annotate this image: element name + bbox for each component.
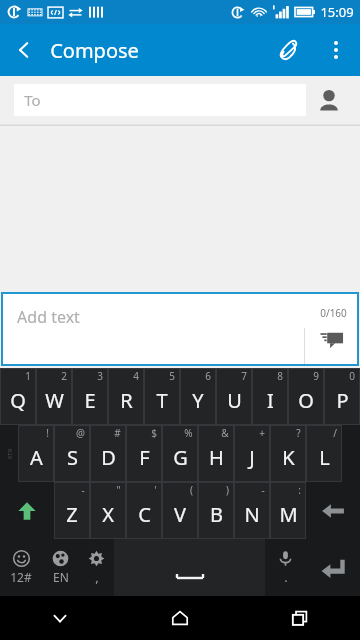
button[interactable]: Pick contact xyxy=(306,77,352,123)
button[interactable]: & xyxy=(198,425,234,482)
button[interactable]: ? xyxy=(270,425,306,482)
button[interactable]: Language xyxy=(42,539,78,596)
button[interactable]: $ xyxy=(126,425,162,482)
button[interactable]: : xyxy=(270,482,306,539)
button[interactable]: Backspace xyxy=(306,482,360,539)
button[interactable]: + xyxy=(234,425,270,482)
staticText: B xyxy=(210,501,223,528)
staticText: " xyxy=(116,483,121,497)
button[interactable]: ! xyxy=(18,425,54,482)
button[interactable]: # xyxy=(90,425,126,482)
staticText: T xyxy=(156,387,168,414)
button[interactable]: More options xyxy=(312,26,360,74)
button[interactable]: 7 xyxy=(216,368,252,425)
button[interactable]: Space xyxy=(114,539,265,596)
staticText: & xyxy=(221,426,229,440)
staticText: Q xyxy=(10,387,26,414)
button[interactable]: Add text xyxy=(1,292,359,366)
staticText: 4 xyxy=(133,369,139,383)
staticText: ' xyxy=(154,483,157,497)
button[interactable]: % xyxy=(162,425,198,482)
button[interactable]: Settings and comma xyxy=(78,539,114,596)
staticText: 9 xyxy=(313,369,319,383)
staticText: Add text xyxy=(17,306,80,328)
button[interactable]: - xyxy=(234,482,270,539)
staticText: # xyxy=(114,426,121,440)
button[interactable]: Symbols xyxy=(0,539,42,596)
staticText: O xyxy=(298,387,314,414)
staticText: V xyxy=(174,501,186,528)
staticText: N xyxy=(244,501,260,528)
staticText: S xyxy=(67,444,78,471)
button[interactable]: Recent apps xyxy=(240,596,360,640)
staticText: ( xyxy=(190,483,193,497)
button[interactable]: / xyxy=(306,425,342,482)
staticText: @ xyxy=(76,426,85,440)
staticText: + xyxy=(259,426,265,440)
button[interactable]: 1 xyxy=(0,368,36,425)
staticText: 3 xyxy=(97,369,103,383)
staticText: 12# xyxy=(10,569,32,585)
button[interactable]: 8 xyxy=(252,368,288,425)
staticText: 0 xyxy=(349,369,355,383)
staticText: . xyxy=(284,568,288,586)
staticText: 1 xyxy=(25,369,31,383)
staticText: C xyxy=(138,501,151,528)
staticText: % xyxy=(184,426,193,440)
button[interactable]: ' xyxy=(126,482,162,539)
staticText: To xyxy=(24,90,41,110)
staticText: E xyxy=(84,387,96,414)
staticText: : xyxy=(298,483,301,497)
button[interactable]: To xyxy=(14,84,306,116)
staticText: F xyxy=(139,444,150,471)
staticText: XT9 xyxy=(5,448,13,459)
staticText: L xyxy=(319,444,330,471)
staticText: I xyxy=(267,387,274,414)
button[interactable]: Back xyxy=(0,26,48,74)
staticText: 2 xyxy=(61,369,67,383)
button[interactable]: 9 xyxy=(288,368,324,425)
staticText: K xyxy=(282,444,295,471)
staticText: U xyxy=(227,387,242,414)
button[interactable]: Home xyxy=(120,596,240,640)
staticText: EN xyxy=(53,569,69,585)
button[interactable]: Shift xyxy=(0,482,54,539)
staticText: / xyxy=(333,426,337,440)
button[interactable]: 3 xyxy=(72,368,108,425)
staticText: 15:09 xyxy=(320,3,354,21)
staticText: ? xyxy=(296,426,301,440)
button[interactable]: ( xyxy=(162,482,198,539)
button[interactable]: Enter xyxy=(306,539,360,596)
staticText: $ xyxy=(151,426,157,440)
button[interactable]: Voice input and period xyxy=(265,539,306,596)
button[interactable]: @ xyxy=(54,425,90,482)
button[interactable]: 2 xyxy=(36,368,72,425)
staticText: - xyxy=(81,483,85,497)
staticText: W xyxy=(45,387,64,414)
staticText: 8 xyxy=(277,369,283,383)
staticText: Y xyxy=(192,387,204,414)
button[interactable]: 6 xyxy=(180,368,216,425)
staticText: M xyxy=(279,501,298,528)
button[interactable]: Attach xyxy=(264,26,312,74)
staticText: X xyxy=(102,501,114,528)
staticText: A xyxy=(30,444,43,471)
staticText: R xyxy=(120,387,133,414)
staticText: , xyxy=(95,568,99,586)
staticText: H xyxy=(209,444,224,471)
button[interactable]: Send message xyxy=(305,312,359,366)
button[interactable]: ) xyxy=(198,482,234,539)
button[interactable]: - xyxy=(54,482,90,539)
button[interactable]: 4 xyxy=(108,368,144,425)
staticText: ! xyxy=(46,426,49,440)
button[interactable]: " xyxy=(90,482,126,539)
staticText: P xyxy=(336,387,349,414)
staticText: G xyxy=(173,444,188,471)
button[interactable]: 0 xyxy=(324,368,360,425)
staticText: 0/160 xyxy=(320,306,347,320)
button[interactable]: Hide keyboard xyxy=(0,596,120,640)
staticText: ) xyxy=(226,483,229,497)
button[interactable]: 5 xyxy=(144,368,180,425)
staticText: - xyxy=(261,483,265,497)
staticText: J xyxy=(249,444,255,471)
